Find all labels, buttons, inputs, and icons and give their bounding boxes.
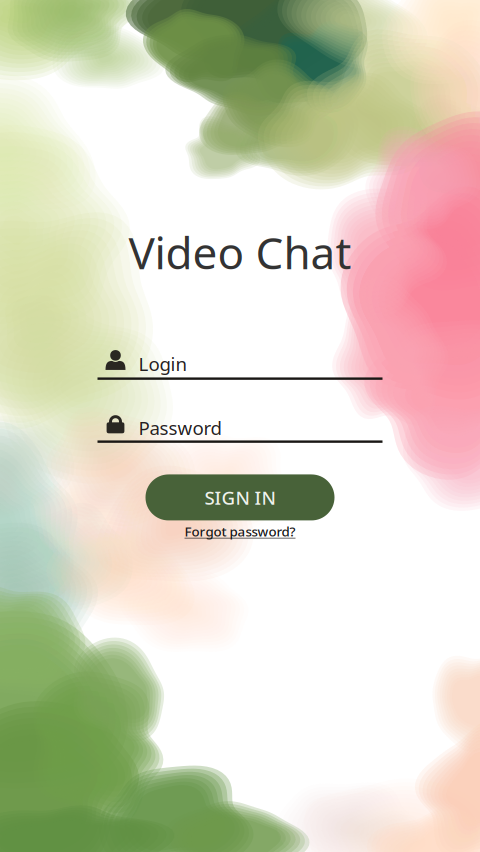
staticText: Forgot password?: [184, 522, 295, 540]
button[interactable]: Password: [97, 410, 382, 443]
staticText: SIGN IN: [204, 485, 275, 510]
button[interactable]: Login: [97, 346, 382, 380]
staticText: Password: [138, 415, 221, 440]
button[interactable]: Forgot password?: [184, 522, 295, 540]
button[interactable]: SIGN IN: [145, 474, 334, 520]
staticText: Login: [138, 351, 187, 376]
staticText: Video Chat: [128, 223, 351, 281]
